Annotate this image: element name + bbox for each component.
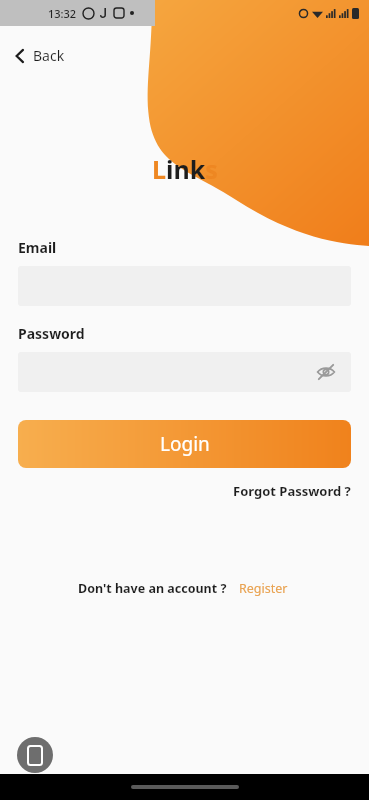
staticText: Links [152, 152, 218, 186]
button[interactable]: Show password [313, 359, 339, 385]
button[interactable]: Forgot Password ? [225, 478, 369, 504]
button[interactable]: Login [18, 420, 351, 468]
staticText: Back [33, 46, 65, 65]
staticText: Register [239, 580, 288, 597]
staticText: Forgot Password ? [233, 482, 351, 500]
staticText: 13:32 [48, 6, 77, 21]
staticText: Login [160, 431, 210, 457]
button[interactable]: Back [0, 40, 79, 71]
button[interactable]: Register [235, 576, 292, 601]
staticText: Password [18, 324, 85, 343]
staticText: Don't have an account ? [78, 580, 227, 597]
staticText: Email [18, 238, 57, 257]
button[interactable]: Device preview [17, 737, 53, 773]
button[interactable]: Show password [18, 352, 351, 392]
